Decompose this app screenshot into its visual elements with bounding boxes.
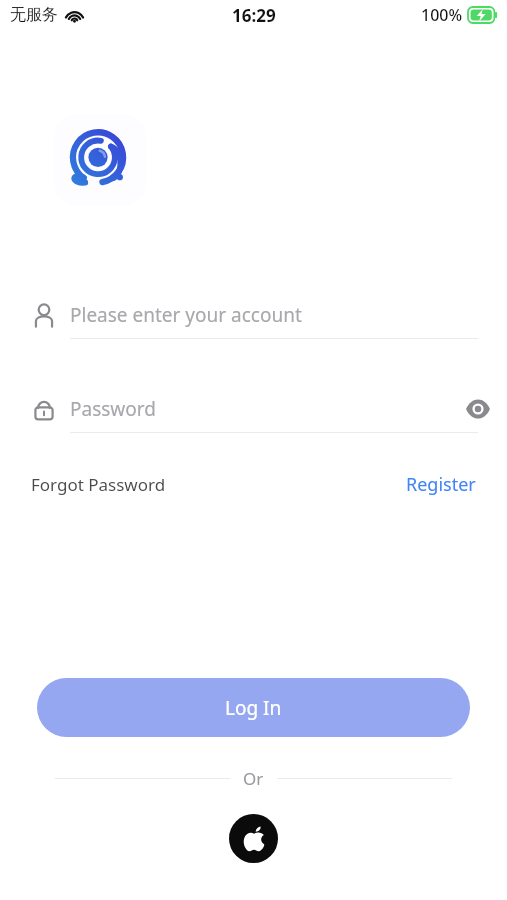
button[interactable]: Please enter your account — [0, 292, 507, 338]
staticText: Register — [406, 472, 476, 497]
button[interactable]: Sign in with Apple — [229, 814, 278, 863]
staticText: Password — [70, 396, 156, 422]
button[interactable]: Password — [0, 386, 507, 432]
staticText: Forgot Password — [31, 473, 166, 496]
button[interactable]: Show password — [456, 387, 500, 431]
staticText: Please enter your account — [70, 302, 302, 328]
staticText: 100% — [421, 4, 463, 26]
staticText: Or — [243, 767, 264, 790]
staticText: 16:29 — [232, 4, 276, 27]
button[interactable]: Forgot Password — [31, 473, 166, 496]
staticText: Log In — [225, 695, 282, 721]
staticText: 无服务 — [10, 5, 58, 25]
button[interactable]: Register — [406, 472, 476, 497]
button[interactable]: Log In — [37, 678, 470, 737]
